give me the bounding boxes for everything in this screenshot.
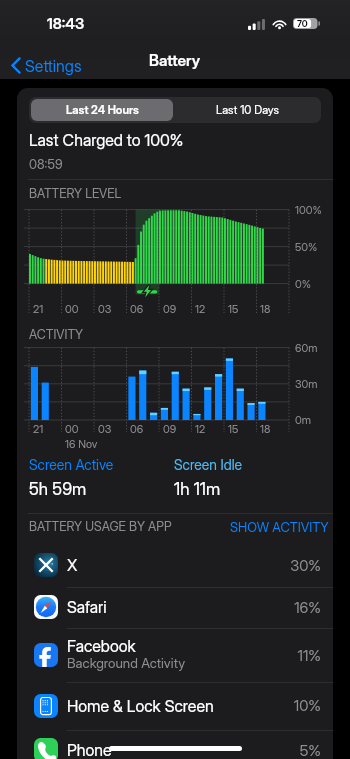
button[interactable] xyxy=(228,515,323,533)
staticText: 09 xyxy=(163,422,177,435)
staticText: 09 xyxy=(163,302,177,315)
staticText: 06 xyxy=(130,422,144,435)
staticText: 60m xyxy=(295,341,318,354)
staticText: Safari xyxy=(67,597,107,616)
staticText: 18:43 xyxy=(47,14,85,32)
staticText: 21 xyxy=(33,302,44,315)
staticText: 12 xyxy=(195,302,206,315)
staticText: Phone xyxy=(67,740,112,759)
staticText: 70 xyxy=(297,18,308,29)
staticText: 16 Nov xyxy=(65,437,98,450)
staticText: X xyxy=(67,555,78,574)
staticText: 30% xyxy=(243,556,321,574)
staticText: 11% xyxy=(243,646,321,664)
staticText: BATTERY USAGE BY APP xyxy=(29,519,172,534)
staticText: ACTIVITY xyxy=(29,327,84,342)
staticText: 30m xyxy=(295,377,318,390)
staticText: 18 xyxy=(260,422,271,435)
button[interactable] xyxy=(17,628,333,682)
staticText: 1h 11m xyxy=(174,479,221,500)
button[interactable] xyxy=(17,544,333,587)
staticText: 10% xyxy=(243,696,321,714)
staticText: Background Activity xyxy=(67,655,186,671)
button[interactable]: Last 10 Days xyxy=(175,97,321,123)
staticText: Screen Active xyxy=(29,456,114,473)
staticText: 00 xyxy=(65,302,79,315)
staticText: 5% xyxy=(243,741,321,759)
staticText: 21 xyxy=(33,422,44,435)
staticText: 5h 59m xyxy=(29,479,87,500)
staticText: 03 xyxy=(98,302,112,315)
staticText: 0m xyxy=(295,413,311,426)
staticText: Facebook xyxy=(67,636,136,655)
staticText: 12 xyxy=(195,422,206,435)
staticText: Home & Lock Screen xyxy=(67,696,214,715)
staticText: 00 xyxy=(65,422,79,435)
staticText: 06 xyxy=(130,302,144,315)
staticText: BATTERY LEVEL xyxy=(29,186,122,201)
staticText: SHOW ACTIVITY xyxy=(230,519,329,535)
button[interactable] xyxy=(17,730,333,759)
staticText: 18 xyxy=(260,302,271,315)
button[interactable] xyxy=(17,587,333,629)
button[interactable] xyxy=(17,682,333,729)
button[interactable]: Settings xyxy=(0,50,90,81)
button[interactable]: Last 24 Hours xyxy=(31,99,173,121)
staticText: 08:59 xyxy=(29,156,63,172)
staticText: Last 10 Days xyxy=(216,103,280,117)
staticText: 16% xyxy=(243,598,321,616)
staticText: 0% xyxy=(295,277,312,290)
staticText: 15 xyxy=(228,422,239,435)
staticText: 03 xyxy=(98,422,112,435)
staticText: Last Charged to 100% xyxy=(29,130,184,149)
staticText: 15 xyxy=(228,302,239,315)
staticText: 100% xyxy=(295,203,322,216)
staticText: 50% xyxy=(295,240,318,253)
staticText: Last 24 Hours xyxy=(66,103,139,117)
staticText: Screen Idle xyxy=(174,456,243,473)
staticText: Battery xyxy=(149,51,201,70)
staticText: Settings xyxy=(25,56,82,75)
